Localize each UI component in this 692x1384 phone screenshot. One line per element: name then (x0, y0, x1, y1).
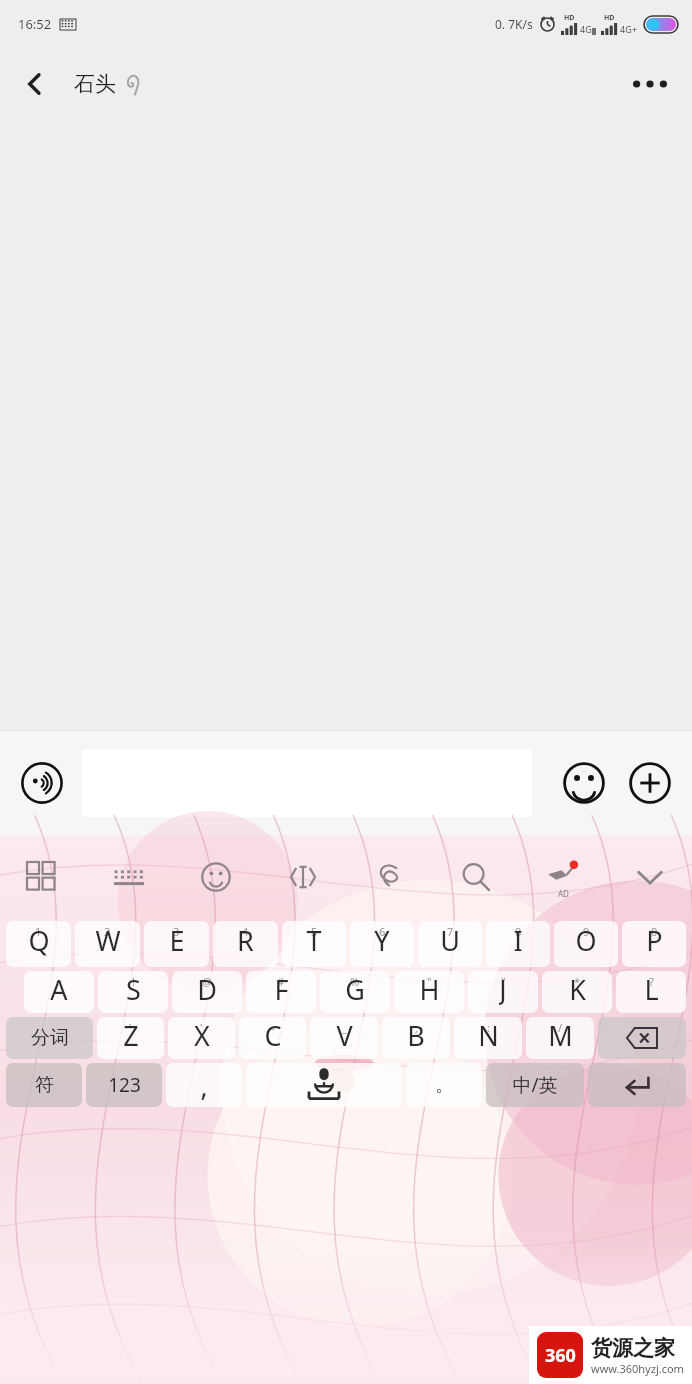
button[interactable]: 4 (213, 921, 278, 967)
staticText: _ (342, 1020, 347, 1035)
button[interactable]: kb (101, 849, 157, 905)
button[interactable]: 0 (622, 921, 686, 967)
button[interactable]: ~ (24, 971, 94, 1013)
staticText: 4G (580, 23, 592, 35)
button[interactable]: Emoji (556, 755, 612, 811)
staticText: www.360hyzj.com (591, 1361, 684, 1376)
button[interactable]: 。 (406, 1063, 482, 1107)
button[interactable]: : (454, 1017, 522, 1059)
staticText: U (440, 922, 460, 959)
button[interactable]: # (246, 971, 316, 1013)
staticText: : (487, 1020, 490, 1035)
staticText: 360 (545, 1343, 576, 1368)
staticText: ~ (56, 974, 63, 989)
button[interactable]: * (542, 971, 612, 1013)
button[interactable]: 9 (554, 921, 618, 967)
staticText: P (646, 922, 663, 959)
button[interactable]: 中/英 (486, 1063, 584, 1107)
staticText: 4 (242, 924, 249, 939)
staticText: - (271, 1020, 275, 1035)
button[interactable]: smile (188, 849, 244, 905)
staticText: " (427, 974, 432, 989)
staticText: W (95, 922, 121, 959)
staticText: 石头 (74, 71, 116, 97)
button[interactable]: 1 (6, 921, 71, 967)
button[interactable]: ' (168, 1017, 235, 1059)
button[interactable]: 123 (86, 1063, 162, 1107)
staticText: 16:52 (18, 15, 52, 33)
staticText: 8 (515, 924, 522, 939)
button[interactable]: More options (622, 56, 678, 112)
staticText: V (336, 1017, 353, 1051)
staticText: S (126, 971, 141, 1005)
button[interactable]: space (246, 1063, 402, 1107)
staticText: 0 (651, 924, 658, 939)
staticText: 。 (435, 1073, 454, 1097)
button[interactable]: down (622, 849, 678, 905)
staticText: 中/英 (512, 1072, 558, 1098)
button[interactable]: , (166, 1063, 242, 1107)
button[interactable]: ! (98, 971, 168, 1013)
staticText: 1 (35, 924, 42, 939)
button[interactable]: 符 (6, 1063, 82, 1107)
button[interactable]: % (320, 971, 390, 1013)
staticText: N (478, 1017, 499, 1051)
staticText: " (501, 974, 506, 989)
button[interactable]: Voice message (14, 755, 70, 811)
button[interactable]: 7 (418, 921, 482, 967)
button[interactable]: 分词 (6, 1017, 93, 1059)
button[interactable]: ' (97, 1017, 164, 1059)
staticText: H (419, 971, 440, 1005)
staticText: 5 (311, 924, 318, 939)
staticText: G (345, 971, 365, 1005)
staticText: 2 (104, 924, 111, 939)
staticText: X (194, 1017, 210, 1051)
staticText: / (558, 1020, 563, 1035)
staticText: J (499, 971, 507, 1005)
button[interactable]: " (468, 971, 538, 1013)
button[interactable]: 3 (144, 921, 209, 967)
button[interactable]: del (598, 1017, 686, 1059)
staticText: + (632, 23, 638, 35)
staticText: R (237, 922, 254, 959)
button[interactable]: 5 (282, 921, 346, 967)
button[interactable]: grid (14, 849, 70, 905)
staticText: AD (558, 888, 569, 899)
button[interactable]: / (526, 1017, 594, 1059)
staticText: 9 (583, 924, 590, 939)
button[interactable]: 2 (75, 921, 140, 967)
button[interactable]: More (622, 755, 678, 811)
staticText: I (513, 922, 523, 959)
button[interactable]: clip (361, 849, 417, 905)
staticText: Q (28, 922, 50, 959)
button[interactable]: search (448, 849, 504, 905)
staticText: M (548, 1017, 573, 1051)
button[interactable]: cursor (275, 849, 331, 905)
button[interactable]: ad (535, 849, 591, 905)
staticText: K (569, 971, 586, 1005)
staticText: # (277, 974, 285, 989)
button[interactable]: ; (382, 1017, 450, 1059)
staticText: @ (202, 974, 212, 989)
staticText: D (197, 971, 217, 1005)
button[interactable]: 6 (350, 921, 414, 967)
staticText: Z (123, 1017, 139, 1051)
button[interactable]: enter (588, 1063, 686, 1107)
staticText: T (306, 922, 322, 959)
button[interactable]: Back (8, 57, 62, 111)
staticText: 符 (35, 1073, 54, 1097)
button[interactable]: ? (616, 971, 686, 1013)
button[interactable]: _ (310, 1017, 378, 1059)
staticText: A (50, 971, 68, 1005)
staticText: ? (649, 974, 654, 989)
button[interactable]: 8 (486, 921, 550, 967)
staticText: ; (415, 1020, 418, 1035)
button[interactable]: - (239, 1017, 306, 1059)
button[interactable]: @ (172, 971, 242, 1013)
staticText: ' (129, 1020, 132, 1035)
staticText: 3 (173, 924, 180, 939)
button[interactable]: " (394, 971, 464, 1013)
staticText: % (350, 974, 360, 989)
staticText: Y (374, 922, 390, 959)
